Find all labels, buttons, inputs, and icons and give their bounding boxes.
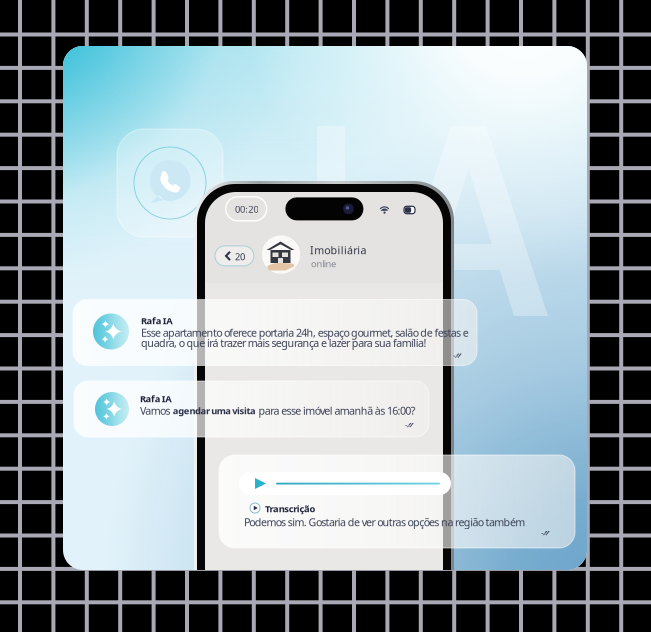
staticText: Rafa IA	[141, 314, 172, 327]
staticText: Esse apartamento oferece portaria 24h, e…	[141, 325, 469, 340]
staticText: agendar uma visita	[173, 404, 256, 417]
staticText: Imobiliária	[310, 243, 366, 257]
staticText: Podemos sim. Gostaria de ver outras opçõ…	[244, 515, 525, 529]
staticText: quadra, o que irá trazer mais segurança …	[141, 336, 426, 350]
button[interactable]: Rafa IA	[73, 299, 477, 365]
button[interactable]: 20	[215, 246, 254, 266]
staticText: Transcrição	[265, 502, 315, 515]
staticText: online	[311, 257, 336, 270]
staticText: 20	[235, 250, 245, 263]
button[interactable]: Rafa IA	[74, 381, 429, 437]
staticText: Rafa IA	[140, 392, 171, 405]
staticText: 00:20	[235, 203, 258, 215]
staticText: Vamos	[140, 403, 173, 418]
staticText: para esse imóvel amanhã às 16:00?	[256, 403, 416, 418]
button[interactable]: Transcrição	[219, 455, 575, 548]
